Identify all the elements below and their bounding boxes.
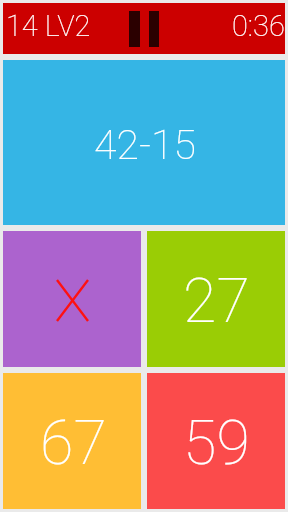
button[interactable]: Wrong answer bbox=[3, 231, 141, 367]
staticText: 27 bbox=[183, 265, 250, 336]
button[interactable]: Answer 67 bbox=[3, 373, 141, 509]
button[interactable]: 14 LV2 bbox=[3, 3, 88, 54]
button[interactable]: Answer 27 bbox=[147, 231, 285, 367]
staticText: 42-15 bbox=[94, 121, 196, 169]
staticText: 67 bbox=[40, 407, 107, 478]
button[interactable]: Answer 59 bbox=[147, 373, 285, 509]
staticText: 0:36 bbox=[232, 9, 285, 43]
button[interactable]: Pause bbox=[124, 7, 164, 51]
staticText: 14 LV2 bbox=[6, 9, 91, 43]
staticText: 59 bbox=[183, 407, 250, 478]
button[interactable]: 42-15 bbox=[3, 60, 285, 225]
button[interactable]: 0:36 bbox=[232, 3, 285, 54]
